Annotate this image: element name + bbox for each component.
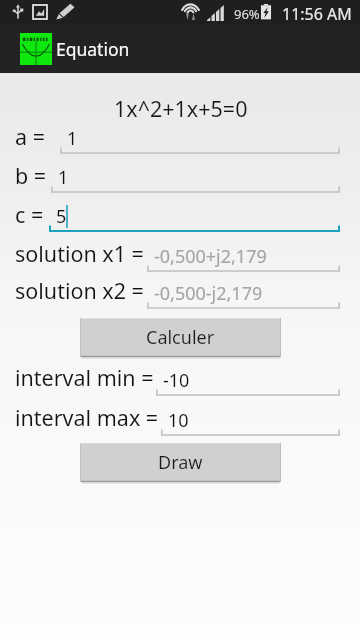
- button[interactable]: 1: [51, 164, 340, 198]
- staticText: solution x2 =: [15, 276, 144, 305]
- staticText: -0,500+j2,179: [154, 244, 267, 269]
- staticText: -10: [163, 368, 190, 393]
- staticText: Equation: [56, 37, 130, 61]
- staticText: 1: [58, 165, 69, 190]
- staticText: Calculer: [146, 325, 215, 350]
- button[interactable]: 10: [161, 407, 340, 441]
- button[interactable]: Draw: [80, 443, 281, 484]
- button[interactable]: 5: [49, 203, 340, 237]
- staticText: 1x^2+1x+5=0: [114, 94, 248, 123]
- staticText: 96%: [234, 5, 260, 23]
- staticText: 5: [56, 204, 67, 229]
- staticText: -0,500-j2,179: [154, 281, 263, 306]
- staticText: 1: [67, 126, 78, 151]
- staticText: a =: [15, 122, 45, 151]
- button[interactable]: -10: [156, 367, 340, 401]
- staticText: 10: [168, 408, 189, 433]
- staticText: solution x1 =: [15, 239, 144, 268]
- button[interactable]: Equation app icon: [0, 24, 360, 73]
- staticText: interval max =: [15, 403, 159, 432]
- button[interactable]: -0,500+j2,179: [147, 243, 340, 277]
- staticText: Draw: [158, 450, 203, 475]
- staticText: interval min =: [15, 363, 154, 392]
- button[interactable]: 1: [60, 125, 340, 159]
- button[interactable]: Calculer: [80, 318, 281, 359]
- staticText: 11:56 AM: [282, 3, 352, 25]
- staticText: c =: [15, 200, 44, 229]
- staticText: b =: [15, 161, 47, 190]
- button[interactable]: -0,500-j2,179: [147, 280, 340, 314]
- other: Equation app icon: [20, 33, 52, 65]
